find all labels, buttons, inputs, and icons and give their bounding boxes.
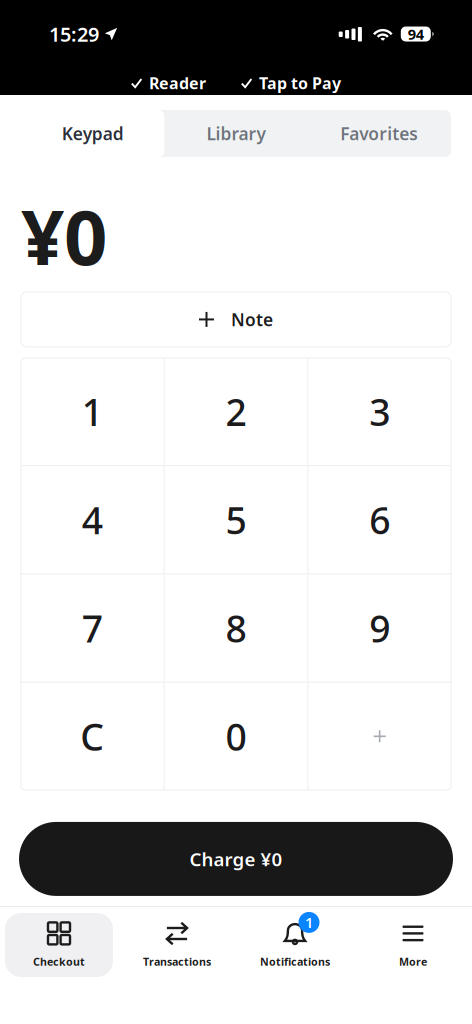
button[interactable]: 9 [308,574,451,682]
button[interactable]: Add [308,683,451,790]
staticText: 4 [82,495,103,545]
button[interactable]: Note [21,292,451,347]
button[interactable]: 5 [165,466,307,573]
staticText: 7 [82,603,103,653]
staticText: 0 [225,711,246,761]
staticText: Checkout [33,954,85,969]
staticText: C [80,711,104,761]
button[interactable]: 8 [165,574,307,682]
staticText: More [399,954,427,969]
staticText: 15:29 [49,21,99,47]
staticText: 6 [369,495,390,545]
staticText: Tap to Pay [259,72,341,94]
staticText: 1 [305,913,313,932]
staticText: 8 [225,603,246,653]
button[interactable]: 2 [165,358,307,465]
button[interactable]: 1 [21,358,164,465]
staticText: Notifications [260,954,330,969]
button[interactable]: 4 [21,466,164,573]
staticText: Keypad [62,122,124,145]
button[interactable]: Checkout [0,913,118,977]
button[interactable]: 6 [308,466,451,573]
staticText: ¥0 [21,185,107,286]
staticText: Charge ¥0 [189,846,282,871]
button[interactable]: 0 [165,683,307,790]
staticText: Note [231,308,273,331]
button[interactable]: 3 [308,358,451,465]
button[interactable]: More [354,913,472,977]
button[interactable]: Charge ¥0 [19,822,453,896]
button[interactable]: Library [164,110,308,157]
button[interactable]: 7 [21,574,164,682]
button[interactable]: Transactions [118,913,236,977]
staticText: 1 [82,387,103,436]
staticText: 94 [408,24,424,44]
button[interactable]: Keypad [21,110,164,157]
staticText: Reader [149,72,206,94]
staticText: Transactions [143,954,211,969]
staticText: 2 [225,387,246,436]
button[interactable]: 1 [236,913,354,977]
staticText: 3 [369,387,390,436]
staticText: Library [206,122,265,145]
staticText: Favorites [340,122,418,145]
button[interactable]: Favorites [308,110,451,157]
button[interactable]: C [21,683,164,790]
staticText: 5 [225,495,246,545]
staticText: 9 [369,603,390,653]
